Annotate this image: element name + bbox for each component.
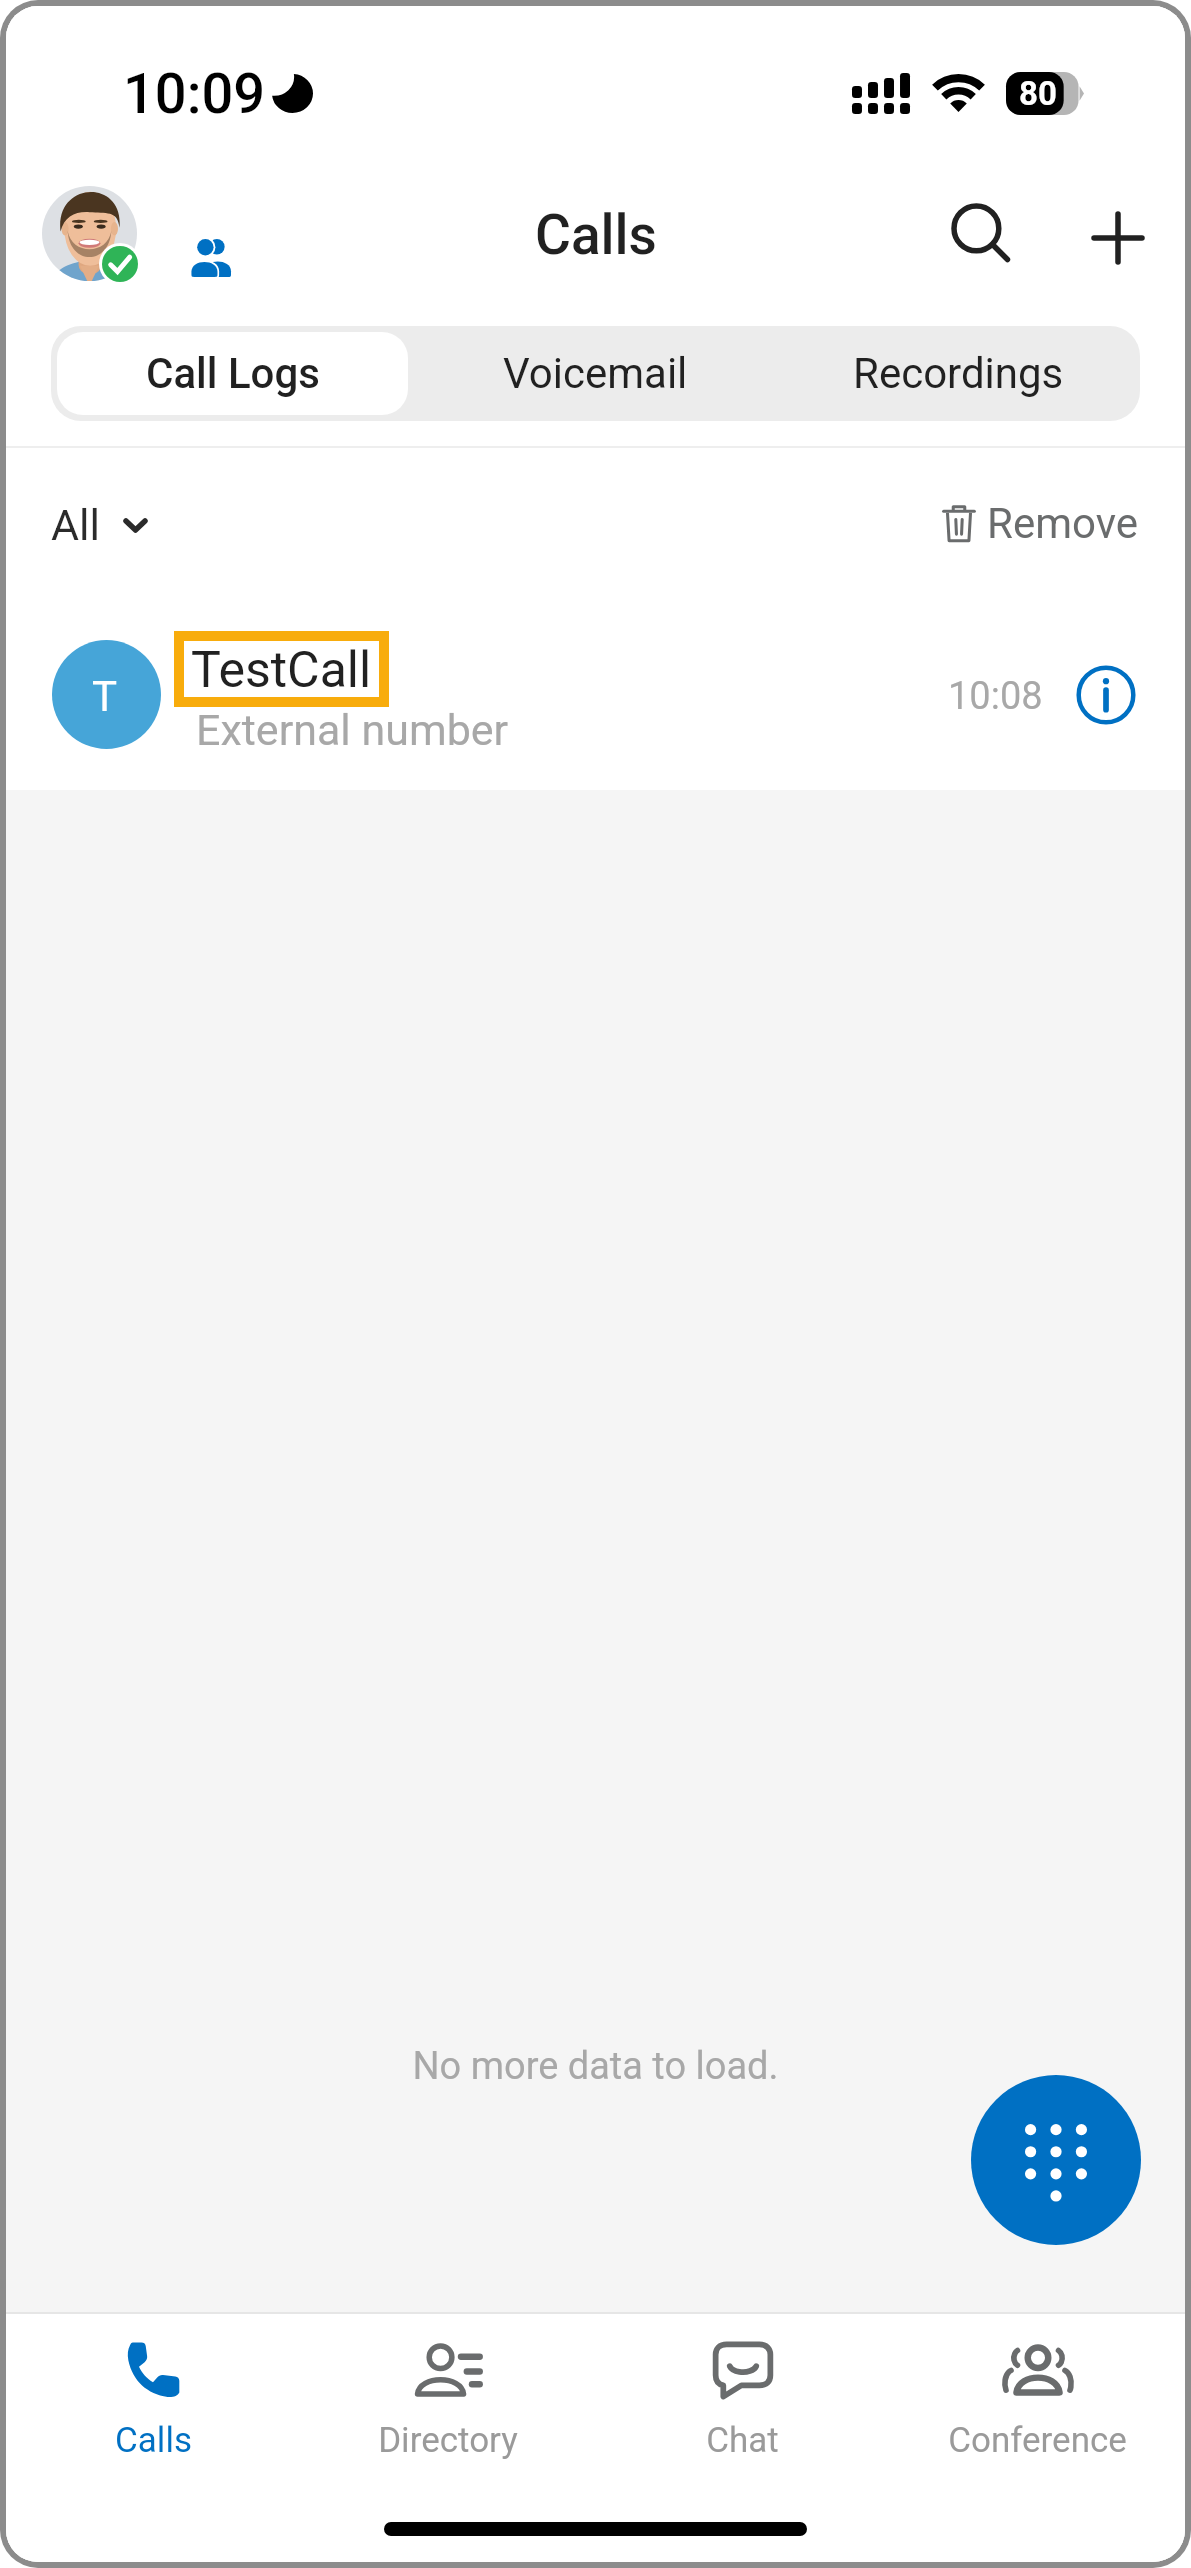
staticText: TestCall [191, 641, 372, 697]
staticText: Voicemail [503, 349, 688, 398]
staticText: 10:09 [123, 61, 266, 127]
staticText: Remove [987, 499, 1138, 548]
staticText: Directory [378, 2420, 518, 2461]
button[interactable]: Dialpad [971, 2075, 1141, 2245]
button[interactable]: Recordings [783, 332, 1134, 415]
button[interactable]: Search [934, 186, 1030, 282]
staticText: Calls [115, 2420, 192, 2461]
button[interactable]: Directory [300, 2321, 595, 2481]
staticText: Chat [706, 2420, 779, 2461]
staticText: 10:08 [948, 674, 1043, 719]
button[interactable]: Call Logs [57, 332, 408, 415]
button[interactable]: Chat [595, 2321, 890, 2481]
button[interactable]: New call [1070, 190, 1166, 286]
button[interactable]: Remove [943, 484, 1138, 562]
staticText: External number [196, 705, 509, 755]
button[interactable]: Call details [1064, 653, 1148, 737]
staticText: Recordings [853, 349, 1064, 398]
button[interactable]: Voicemail [420, 332, 771, 415]
staticText: Call Logs [146, 349, 320, 398]
button[interactable]: All [51, 486, 145, 564]
button[interactable] [6, 600, 1185, 790]
button[interactable]: Contacts [174, 221, 246, 293]
staticText: T [92, 672, 118, 721]
button[interactable]: Calls [6, 2321, 300, 2481]
staticText: 80 [1019, 74, 1057, 113]
staticText: Calls [535, 203, 657, 267]
staticText: No more data to load. [6, 2044, 1185, 2089]
button[interactable]: Profile [42, 186, 137, 281]
staticText: Conference [948, 2420, 1127, 2461]
button[interactable]: Conference [890, 2321, 1185, 2481]
staticText: All [51, 500, 100, 550]
